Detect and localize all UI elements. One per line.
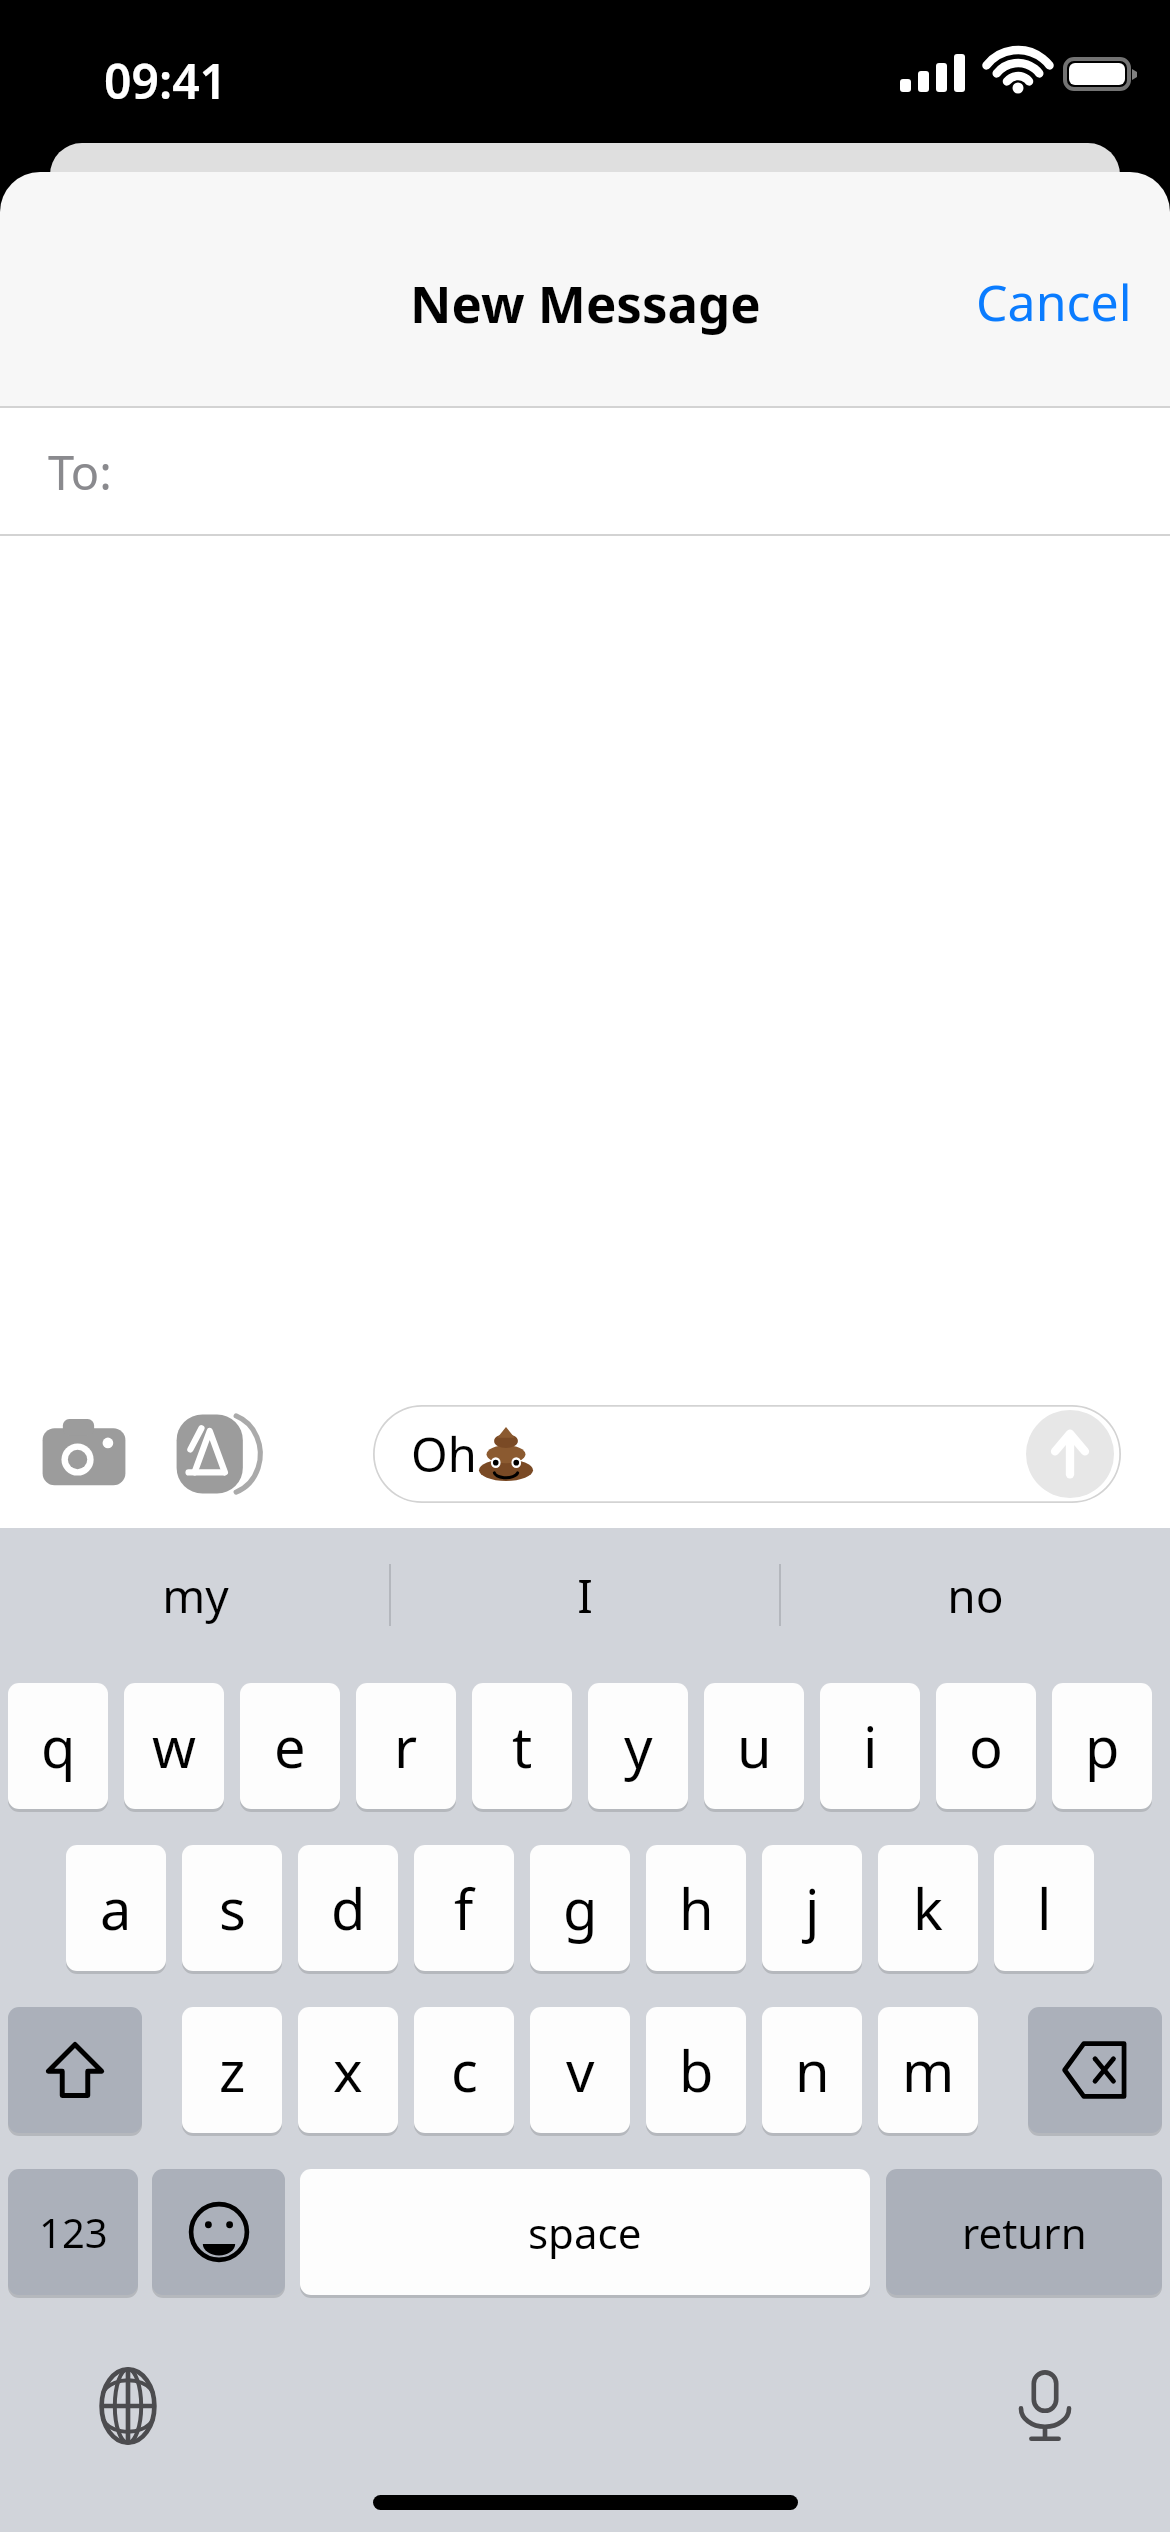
- button[interactable]: Apps: [172, 1408, 264, 1500]
- button[interactable]: b: [646, 2007, 746, 2133]
- staticText: q: [41, 1708, 76, 1784]
- button[interactable]: a: [66, 1845, 166, 1971]
- button[interactable]: Change keyboard: [88, 2366, 168, 2446]
- staticText: s: [219, 1870, 246, 1946]
- button[interactable]: u: [704, 1683, 804, 1809]
- button[interactable]: Oh: [373, 1405, 1121, 1503]
- button[interactable]: 123: [8, 2169, 138, 2295]
- staticText: a: [100, 1870, 132, 1946]
- button[interactable]: f: [414, 1845, 514, 1971]
- button[interactable]: n: [762, 2007, 862, 2133]
- button[interactable]: g: [530, 1845, 630, 1971]
- button[interactable]: s: [182, 1845, 282, 1971]
- button[interactable]: v: [530, 2007, 630, 2133]
- staticText: l: [1037, 1870, 1052, 1946]
- button[interactable]: no: [780, 1528, 1170, 1662]
- staticText: r: [394, 1708, 418, 1784]
- button[interactable]: return: [886, 2169, 1162, 2295]
- staticText: e: [274, 1708, 306, 1784]
- staticText: y: [624, 1708, 653, 1784]
- button[interactable]: Camera: [38, 1408, 130, 1500]
- staticText: x: [333, 2032, 363, 2108]
- button[interactable]: h: [646, 1845, 746, 1971]
- button[interactable]: [152, 2169, 285, 2295]
- button[interactable]: e: [240, 1683, 340, 1809]
- button[interactable]: Send: [1026, 1410, 1114, 1498]
- button[interactable]: m: [878, 2007, 978, 2133]
- button[interactable]: space: [300, 2169, 870, 2295]
- staticText: n: [795, 2032, 830, 2108]
- button[interactable]: l: [994, 1845, 1094, 1971]
- staticText: 123: [39, 2205, 108, 2259]
- staticText: j: [805, 1870, 820, 1946]
- button[interactable]: d: [298, 1845, 398, 1971]
- staticText: Oh: [411, 1422, 477, 1486]
- staticText: g: [563, 1870, 598, 1946]
- staticText: space: [528, 2204, 642, 2261]
- staticText: z: [219, 2032, 246, 2108]
- button[interactable]: o: [936, 1683, 1036, 1809]
- button[interactable]: To:: [0, 408, 1170, 535]
- button[interactable]: Cancel: [938, 250, 1170, 354]
- staticText: Cancel: [976, 268, 1132, 336]
- button[interactable]: Dictation: [1005, 2366, 1085, 2446]
- button[interactable]: c: [414, 2007, 514, 2133]
- staticText: m: [902, 2032, 955, 2108]
- staticText: 09:41: [104, 48, 228, 113]
- button[interactable]: k: [878, 1845, 978, 1971]
- staticText: h: [679, 1870, 714, 1946]
- button[interactable]: y: [588, 1683, 688, 1809]
- staticText: o: [969, 1708, 1003, 1784]
- button[interactable]: i: [820, 1683, 920, 1809]
- staticText: p: [1085, 1708, 1120, 1784]
- staticText: no: [947, 1564, 1004, 1627]
- staticText: d: [331, 1870, 366, 1946]
- staticText: my: [162, 1564, 229, 1627]
- staticText: New Message: [410, 268, 761, 337]
- button[interactable]: w: [124, 1683, 224, 1809]
- button[interactable]: j: [762, 1845, 862, 1971]
- staticText: i: [863, 1708, 878, 1784]
- staticText: b: [679, 2032, 714, 2108]
- button[interactable]: I: [390, 1528, 780, 1662]
- button[interactable]: x: [298, 2007, 398, 2133]
- button[interactable]: q: [8, 1683, 108, 1809]
- button[interactable]: t: [472, 1683, 572, 1809]
- staticText: I: [577, 1564, 593, 1627]
- staticText: c: [451, 2032, 478, 2108]
- staticText: return: [962, 2204, 1087, 2261]
- staticText: k: [913, 1870, 943, 1946]
- button[interactable]: p: [1052, 1683, 1152, 1809]
- button[interactable]: my: [0, 1528, 390, 1662]
- staticText: To:: [48, 440, 112, 504]
- staticText: u: [737, 1708, 772, 1784]
- button[interactable]: r: [356, 1683, 456, 1809]
- button[interactable]: [8, 2007, 142, 2133]
- staticText: t: [512, 1708, 533, 1784]
- staticText: w: [152, 1708, 197, 1784]
- button[interactable]: z: [182, 2007, 282, 2133]
- button[interactable]: [1028, 2007, 1162, 2133]
- staticText: f: [454, 1870, 474, 1946]
- staticText: v: [566, 2032, 595, 2108]
